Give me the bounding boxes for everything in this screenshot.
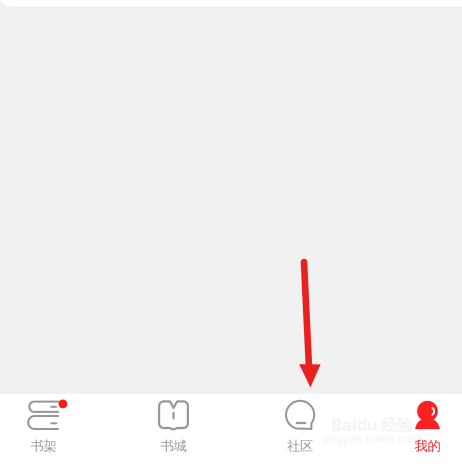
staticText: Baidu 经验 [331,414,413,435]
staticText: 社区 [287,438,313,454]
button[interactable]: 书城 [133,394,213,464]
button[interactable]: 书架 [3,394,83,464]
button[interactable]: 社区 [260,394,340,464]
staticText: 书城 [160,438,186,454]
staticText: 书架 [30,438,56,454]
staticText: jingyan.baidu.com [323,431,421,446]
button[interactable]: 我的 [387,394,462,464]
staticText: 我的 [414,438,440,454]
